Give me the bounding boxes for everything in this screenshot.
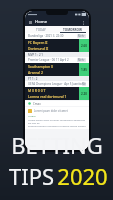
button[interactable]: Premier League · 06 11 April 2 <box>25 57 89 63</box>
staticText: Premier League · 06 11 April 2 <box>28 58 69 62</box>
button[interactable]: TOMORROW <box>57 26 89 33</box>
staticText: Lorem <box>28 114 36 117</box>
staticText: FC Bayern II <box>28 40 48 45</box>
staticText: Bundesliga · 2021 3. 22:30 <box>28 34 64 38</box>
staticText: Lorem ipsum dolor sit amet <box>34 109 68 113</box>
staticText: UEFA Champions League · Apr 5 Juanita <box>28 82 82 86</box>
button[interactable]: More options <box>81 20 86 25</box>
staticText: Mehr <box>82 82 86 86</box>
staticText: M 0 R 0 0 T <box>28 88 46 93</box>
button[interactable]: Bundesliga · 2021 3. 22:30 <box>25 33 89 39</box>
staticText: TOMORROW <box>63 28 83 32</box>
staticText: BETTING <box>11 130 103 160</box>
button[interactable]: UEFA Champions League · Apr 5 Juanita <box>25 81 89 87</box>
button[interactable]: TODAY <box>25 26 57 33</box>
button[interactable]: M 0 R 0 0 T <box>25 87 89 100</box>
staticText: Arsenal 2 <box>28 70 44 75</box>
staticText: Lorem ipsum dolor sit amet consectetur a… <box>28 118 86 127</box>
staticText: Lorena real dortmund 1 <box>28 94 67 99</box>
staticText: Home <box>35 19 48 25</box>
staticText: TIPS <box>6 161 57 191</box>
staticText: TODAY <box>36 28 46 32</box>
staticText: Southampton 0 <box>28 64 54 69</box>
staticText: 1.85 <box>81 68 87 72</box>
button[interactable]: Southampton 0 <box>25 63 89 76</box>
button[interactable]: FC Bayern II <box>25 39 89 52</box>
staticText: Dortmund II <box>28 46 49 51</box>
staticText: 2.60 <box>81 44 87 48</box>
button[interactable]: Cmax <box>25 101 89 106</box>
staticText: Cmax <box>33 102 41 106</box>
staticText: FT 1 : 2 <box>28 77 38 81</box>
staticText: 2.20 <box>81 92 87 96</box>
staticText: MVP 1 : 2 1 <box>28 53 43 57</box>
button[interactable]: Open navigation menu <box>28 20 33 25</box>
staticText: Mehr <box>78 58 85 62</box>
staticText: Mehr <box>78 34 85 38</box>
staticText: 2020 <box>57 161 108 191</box>
